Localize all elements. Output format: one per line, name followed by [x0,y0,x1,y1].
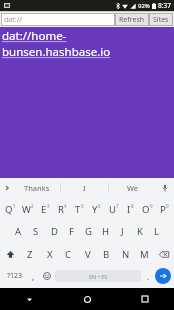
button[interactable]: Z [20,243,40,266]
staticText: O [142,203,150,216]
staticText: We [127,183,139,193]
button[interactable]: Comma [27,266,39,286]
staticText: Sites [153,15,169,25]
staticText: B [103,248,110,261]
button[interactable]: U [105,199,122,220]
staticText: H [102,225,110,238]
staticText: U [109,203,116,216]
staticText: Z [27,248,33,261]
button[interactable]: H [97,220,114,243]
staticText: 2 [31,203,34,209]
button[interactable]: Q [1,199,19,220]
staticText: , [32,271,35,282]
button[interactable]: T [71,199,88,220]
staticText: X [47,248,53,261]
staticText: G [85,225,92,238]
staticText: 8 [131,203,134,209]
button[interactable]: More suggestions [0,178,14,197]
staticText: W [22,203,31,216]
staticText: K [137,225,143,238]
staticText: V [85,248,91,261]
staticText: 6 [98,203,101,209]
button[interactable]: Space [55,270,141,282]
button[interactable]: Recents [116,288,174,310]
staticText: 1 [13,203,16,209]
staticText: N [122,248,130,261]
staticText: dat:// [4,15,22,25]
staticText: I [83,183,86,193]
button[interactable]: Sites [149,13,173,26]
button[interactable]: ?123 [3,266,27,286]
staticText: P [160,203,166,216]
staticText: D [51,225,58,238]
staticText: Y [92,203,98,216]
staticText: R [58,203,64,216]
staticText: S [33,225,39,238]
staticText: ?123 [7,271,23,281]
staticText: EN • ES [89,273,108,280]
button[interactable]: I [122,199,139,220]
staticText: I [127,203,131,216]
button[interactable]: Shift [1,243,20,266]
button[interactable]: dat://home-bunsen.hashbase.io [2,28,174,60]
button[interactable]: Thanks [14,178,60,197]
button[interactable]: Backspace [154,243,173,266]
button[interactable]: V [78,243,97,266]
button[interactable]: C [59,243,78,266]
staticText: 3 [47,203,50,209]
button[interactable]: L [148,220,165,243]
staticText: 5 [81,203,84,209]
staticText: 0 [166,203,169,209]
staticText: 8:37 [158,1,171,10]
button[interactable]: K [131,220,148,243]
button[interactable]: Close keyboard [0,288,58,310]
staticText: L [154,225,159,238]
button[interactable]: G [80,220,97,243]
staticText: 4 [64,203,67,209]
staticText: A [15,225,22,238]
button[interactable]: B [97,243,116,266]
staticText: Refresh [119,15,145,25]
button[interactable]: J [114,220,131,243]
button[interactable]: O [139,199,156,220]
staticText: Q [5,203,13,216]
button[interactable]: Enter [155,268,171,284]
button[interactable]: dat:// [1,13,115,26]
button[interactable]: W [19,199,37,220]
button[interactable]: X [40,243,59,266]
staticText: C [65,248,72,261]
staticText: 7 [116,203,119,209]
button[interactable]: A [9,220,27,243]
staticText: J [121,225,124,238]
button[interactable]: Refresh [115,13,149,26]
button[interactable]: D [45,220,63,243]
staticText: T [75,203,81,216]
button[interactable]: Voice input [156,178,174,197]
button[interactable]: N [116,243,135,266]
staticText: Thanks [24,183,50,193]
button[interactable]: Y [88,199,105,220]
button[interactable]: I [61,178,108,197]
button[interactable]: S [27,220,45,243]
staticText: . [147,271,150,282]
button[interactable]: F [63,220,80,243]
staticText: 9 [150,203,153,209]
button[interactable]: Emoji [39,266,55,286]
staticText: M [140,248,149,261]
button[interactable]: M [135,243,154,266]
button[interactable]: Period [141,266,155,286]
staticText: F [69,225,74,238]
button[interactable]: Home [58,288,116,310]
staticText: E [41,203,47,216]
button[interactable]: R [54,199,71,220]
button[interactable]: E [37,199,54,220]
button[interactable]: P [156,199,173,220]
staticText: 92% [138,2,150,10]
button[interactable]: We [109,178,156,197]
